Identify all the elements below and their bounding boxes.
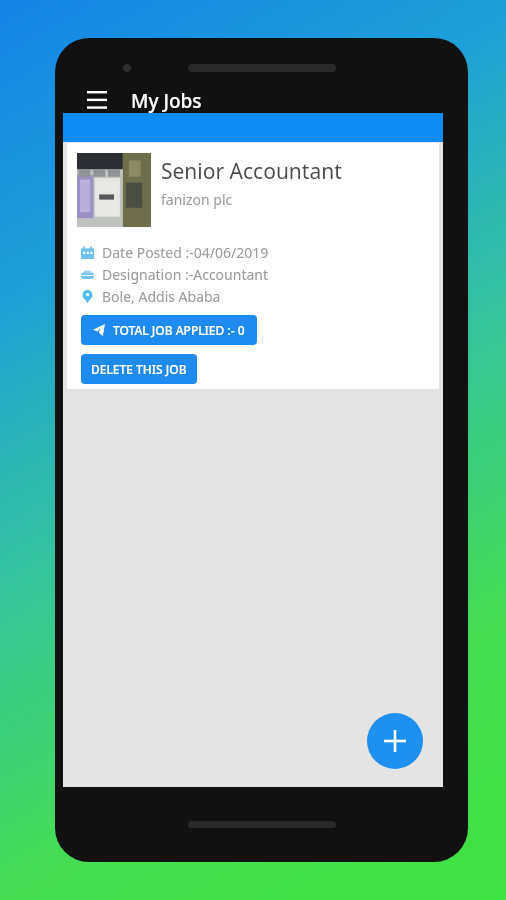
- button[interactable]: TOTAL JOB APPLIED :- 0: [81, 315, 257, 345]
- staticText: fanizon plc: [161, 190, 233, 209]
- button[interactable]: Senior Accountant: [67, 143, 439, 389]
- staticText: TOTAL JOB APPLIED :- 0: [113, 322, 245, 338]
- button[interactable]: DELETE THIS JOB: [81, 354, 197, 384]
- staticText: My Jobs: [131, 88, 202, 114]
- staticText: Date Posted :-04/06/2019: [102, 243, 269, 262]
- staticText: Senior Accountant: [161, 157, 342, 186]
- staticText: DELETE THIS JOB: [91, 361, 187, 377]
- button[interactable]: Add new job: [367, 713, 423, 769]
- staticText: Bole, Addis Ababa: [102, 287, 221, 306]
- button[interactable]: Open navigation menu: [77, 86, 117, 115]
- staticText: Designation :-Accountant: [102, 265, 269, 284]
